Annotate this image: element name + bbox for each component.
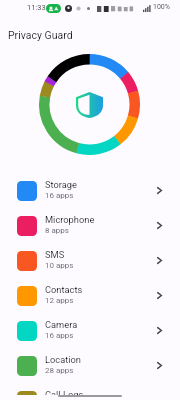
staticText: 100%: [153, 3, 170, 11]
staticText: SMS: [45, 249, 65, 260]
staticText: 8 apps: [45, 226, 69, 235]
button[interactable]: Call Logs: [0, 382, 180, 395]
staticText: Microphone: [45, 214, 95, 225]
staticText: Call Logs: [45, 389, 84, 395]
staticText: Contacts: [45, 284, 83, 295]
staticText: Storage: [45, 179, 77, 190]
staticText: Location: [45, 354, 81, 365]
staticText: 11:33: [27, 3, 46, 12]
staticText: Privacy Guard: [8, 29, 73, 41]
staticText: 28 apps: [45, 366, 74, 375]
button[interactable]: Camera: [0, 312, 180, 347]
staticText: 12 apps: [45, 296, 74, 305]
staticText: Camera: [45, 319, 78, 330]
button[interactable]: Storage: [0, 172, 180, 207]
staticText: 10 apps: [45, 261, 74, 270]
button[interactable]: SMS: [0, 242, 180, 277]
button[interactable]: Contacts: [0, 277, 180, 312]
button[interactable]: Microphone: [0, 207, 180, 242]
staticText: 16 apps: [45, 191, 74, 200]
staticText: 16 apps: [45, 331, 74, 340]
button[interactable]: Location: [0, 347, 180, 382]
